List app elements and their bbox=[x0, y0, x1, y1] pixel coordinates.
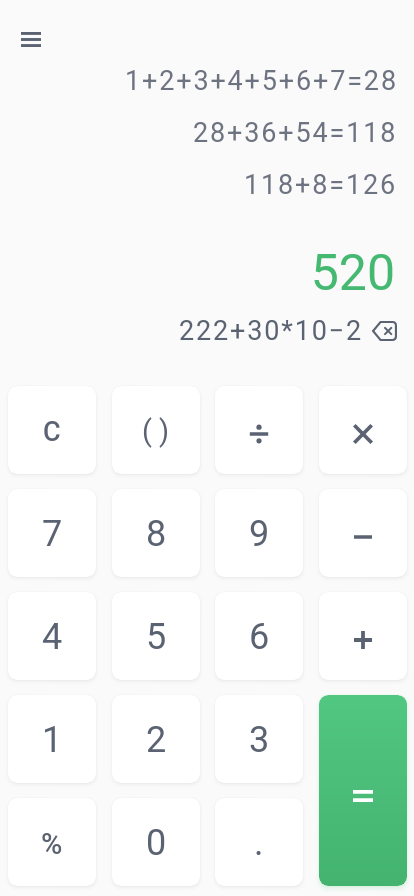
staticText: 6 bbox=[249, 616, 270, 658]
staticText: 118+8=126 bbox=[244, 169, 398, 201]
staticText: C bbox=[43, 416, 61, 448]
button[interactable]: C bbox=[8, 386, 96, 474]
button[interactable]: 6 bbox=[215, 592, 303, 680]
button[interactable]: 3 bbox=[215, 695, 303, 783]
staticText: 28+36+54=118 bbox=[193, 117, 398, 149]
staticText: % bbox=[41, 827, 63, 861]
button[interactable]: ( ) bbox=[112, 386, 200, 474]
staticText: 4 bbox=[42, 616, 63, 658]
staticText: 7 bbox=[42, 513, 63, 555]
button[interactable]: Backspace bbox=[369, 316, 399, 346]
button[interactable]: 4 bbox=[8, 592, 96, 680]
staticText: . bbox=[254, 822, 264, 864]
staticText: 9 bbox=[249, 513, 270, 555]
button[interactable]: Equals bbox=[319, 695, 407, 886]
staticText: 5 bbox=[146, 616, 167, 658]
button[interactable]: 1 bbox=[8, 695, 96, 783]
button[interactable]: Menu bbox=[11, 19, 51, 59]
button[interactable]: 0 bbox=[112, 798, 200, 886]
staticText: 2 bbox=[146, 719, 167, 761]
staticText: ( ) bbox=[142, 414, 170, 448]
staticText: 520 bbox=[0, 244, 395, 303]
staticText: 0 bbox=[146, 822, 167, 864]
staticText: 1+2+3+4+5+6+7=28 bbox=[125, 65, 398, 97]
button[interactable] bbox=[319, 489, 407, 577]
button[interactable]: 7 bbox=[8, 489, 96, 577]
button[interactable]: 2 bbox=[112, 695, 200, 783]
button[interactable]: 8 bbox=[112, 489, 200, 577]
button[interactable] bbox=[319, 592, 407, 680]
staticText: 3 bbox=[249, 719, 270, 761]
staticText: 1 bbox=[42, 719, 63, 761]
button[interactable] bbox=[319, 386, 407, 474]
button[interactable]: 9 bbox=[215, 489, 303, 577]
button[interactable]: . bbox=[215, 798, 303, 886]
button[interactable]: 5 bbox=[112, 592, 200, 680]
staticText: 8 bbox=[146, 513, 167, 555]
staticText: 222+30*10−2 bbox=[179, 315, 364, 347]
button[interactable]: % bbox=[8, 798, 96, 886]
button[interactable] bbox=[215, 386, 303, 474]
